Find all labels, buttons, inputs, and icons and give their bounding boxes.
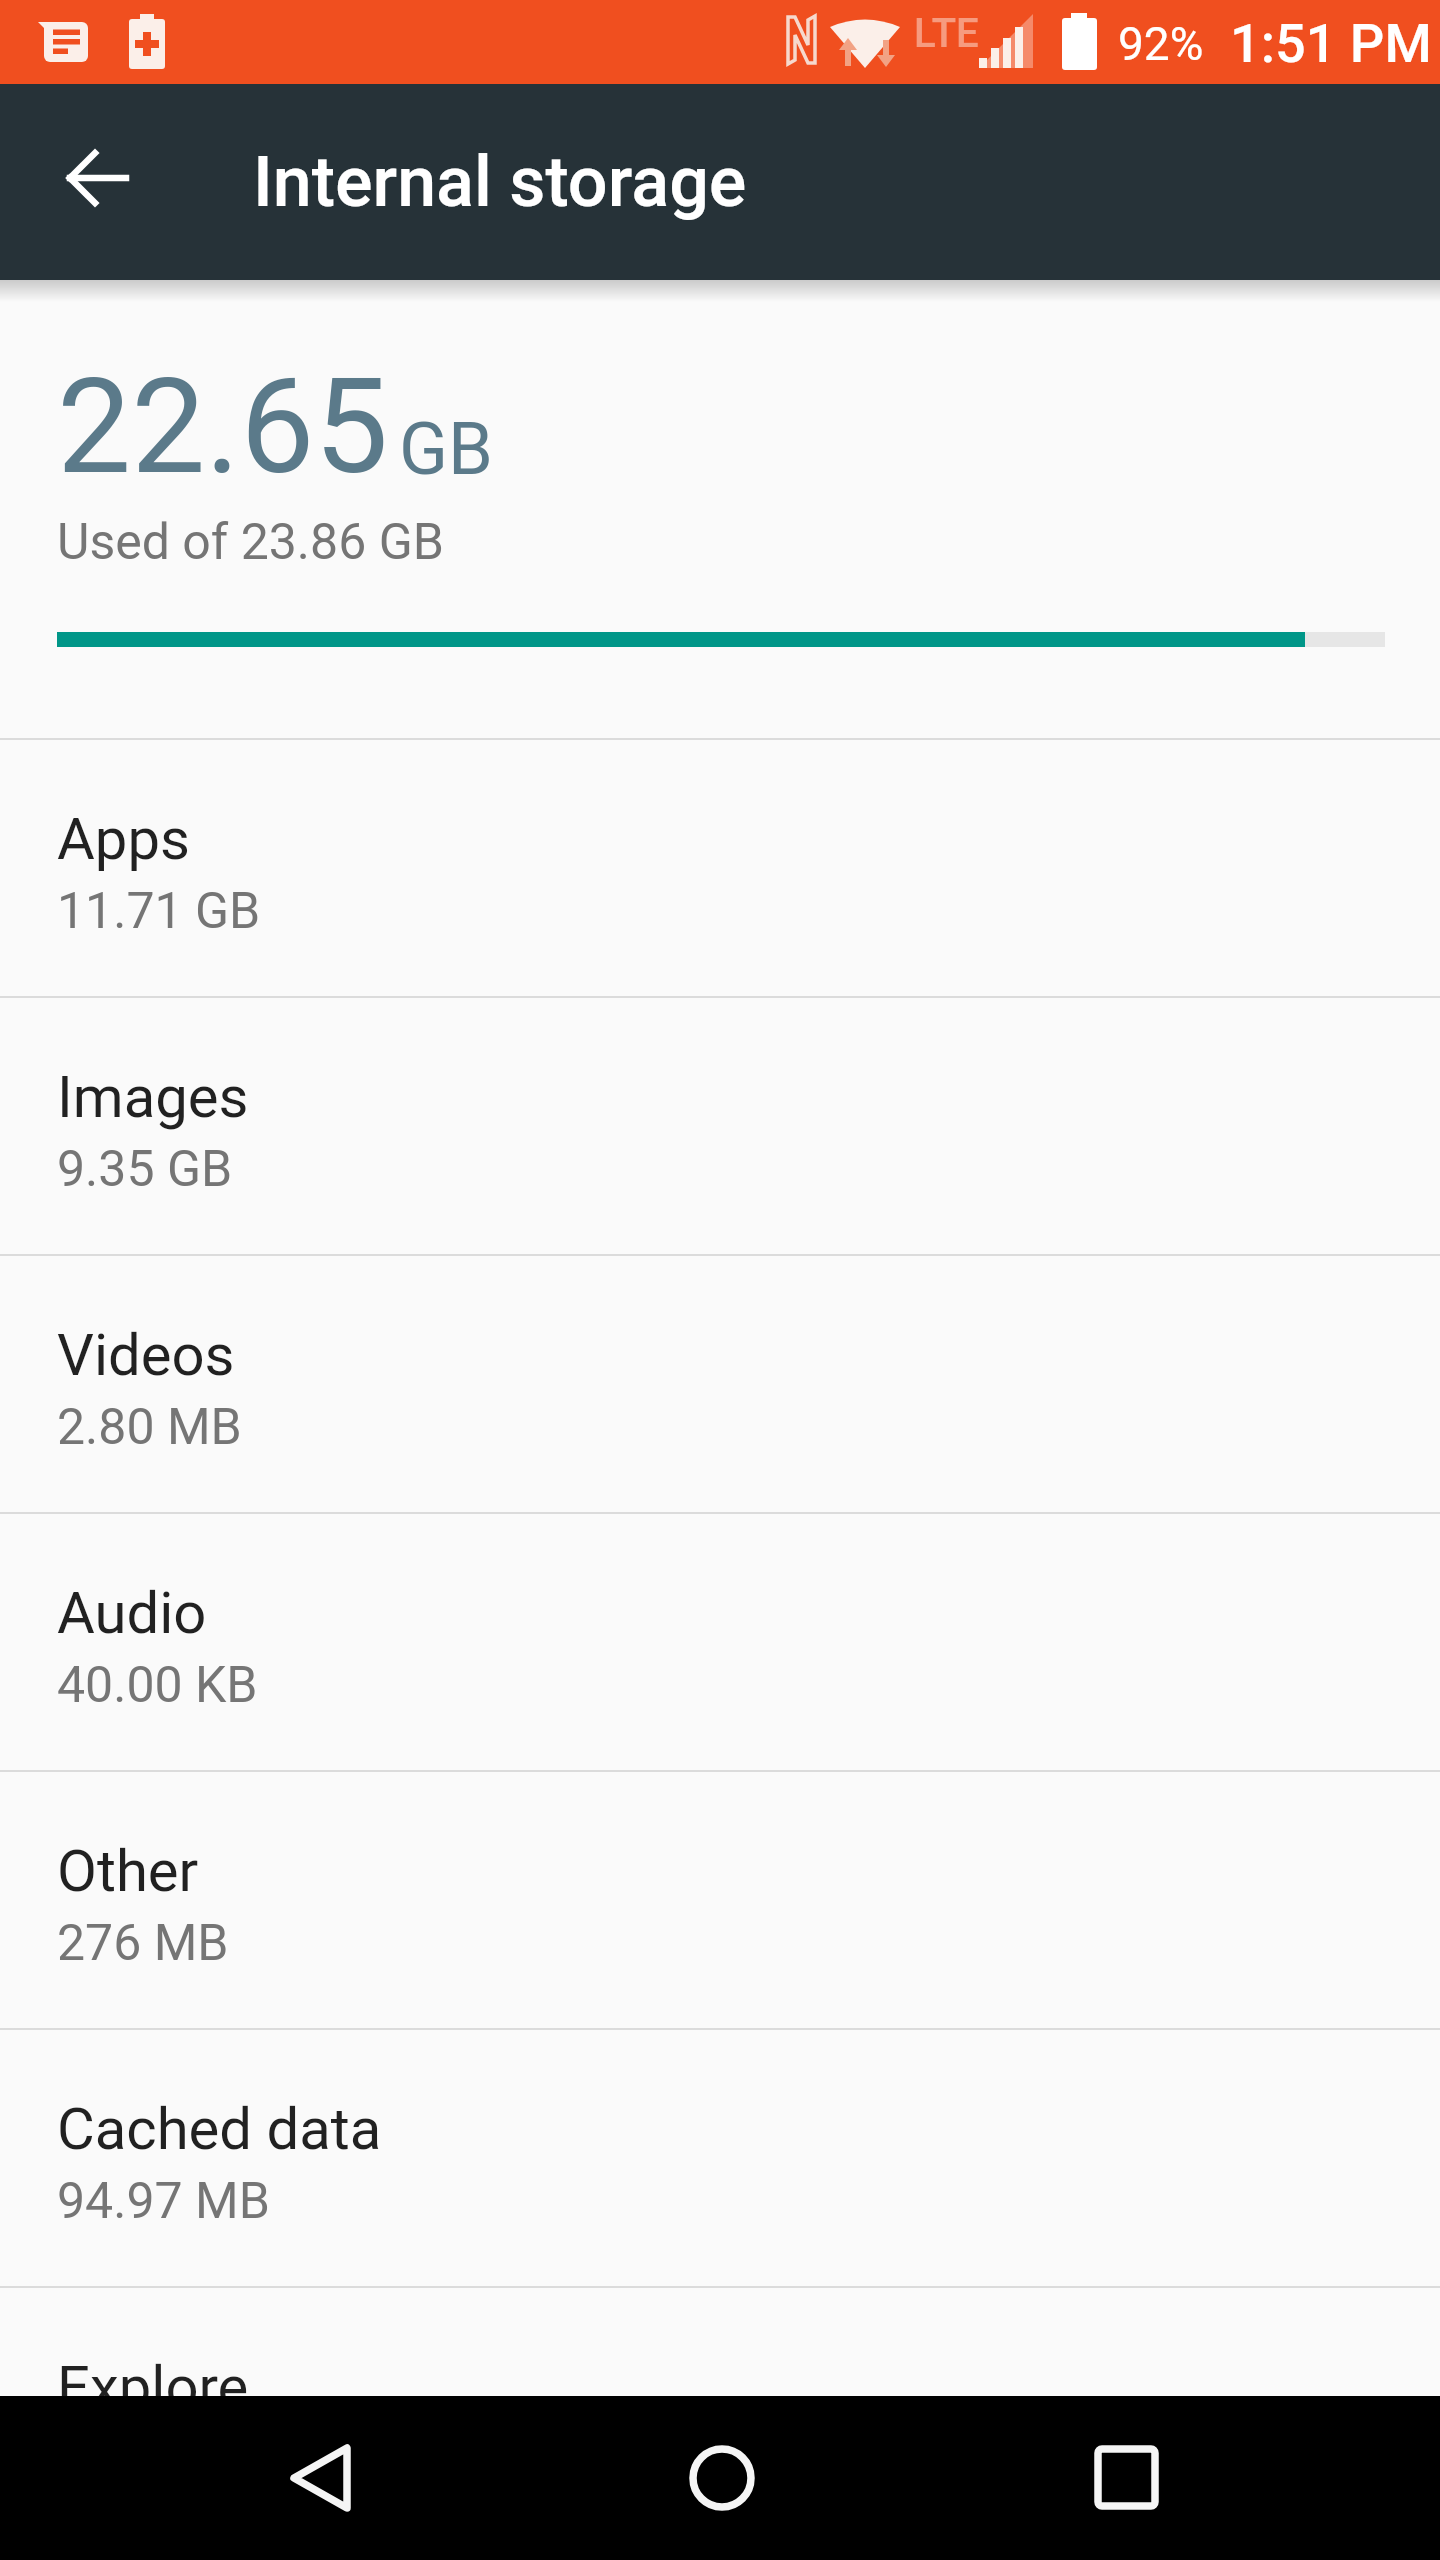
button[interactable]: Images <box>0 998 1440 1254</box>
button[interactable]: Audio <box>0 1514 1440 1770</box>
button[interactable]: Explore <box>0 2288 1440 2396</box>
button[interactable] <box>260 2418 380 2538</box>
staticText: Used of 23.86 GB <box>57 513 444 572</box>
staticText: Audio <box>57 1579 207 1647</box>
button[interactable]: Videos <box>0 1256 1440 1512</box>
staticText: 22.65 <box>57 350 389 505</box>
staticText: GB <box>399 407 493 491</box>
staticText: 11.71 GB <box>57 882 261 941</box>
staticText: Videos <box>57 1321 235 1389</box>
staticText: Cached data <box>57 2095 382 2163</box>
staticText: 9.35 GB <box>57 1140 233 1199</box>
staticText: 92% <box>1118 17 1204 71</box>
staticText: 276 MB <box>57 1914 229 1973</box>
button[interactable]: Apps <box>0 740 1440 996</box>
button[interactable] <box>662 2418 782 2538</box>
staticText: LTE <box>914 10 979 57</box>
staticText: Images <box>57 1063 249 1131</box>
staticText: 2.80 MB <box>57 1398 242 1457</box>
staticText: 40.00 KB <box>57 1656 258 1715</box>
button[interactable] <box>28 112 168 252</box>
staticText: Internal storage <box>253 141 747 223</box>
staticText: 94.97 MB <box>57 2172 270 2231</box>
staticText: 1:51 PM <box>1230 12 1432 75</box>
button[interactable]: Cached data <box>0 2030 1440 2286</box>
button[interactable]: Other <box>0 1772 1440 2028</box>
staticText: Other <box>57 1837 199 1905</box>
staticText: Apps <box>57 805 190 873</box>
staticText: Explore <box>57 2353 249 2396</box>
button[interactable] <box>1066 2418 1186 2538</box>
